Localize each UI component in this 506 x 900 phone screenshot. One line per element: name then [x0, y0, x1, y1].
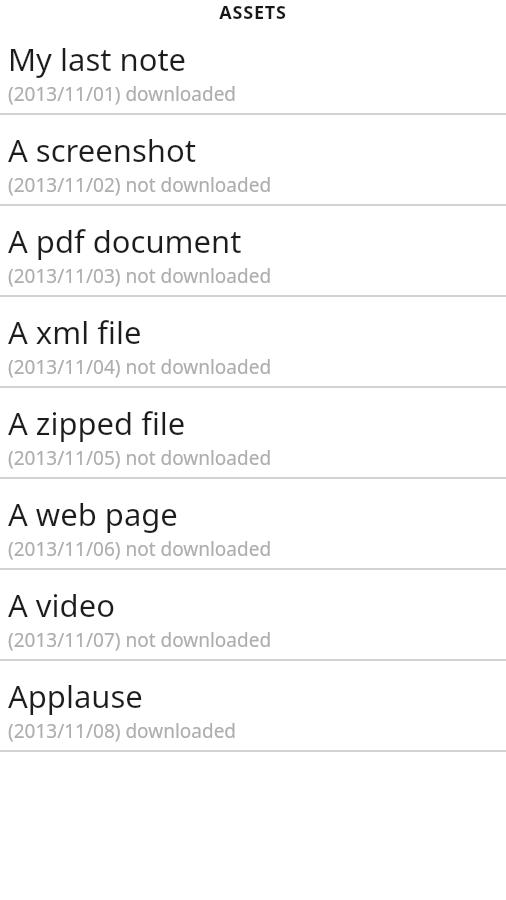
staticText: A zipped file — [8, 402, 186, 444]
button[interactable]: My last note — [0, 24, 506, 113]
staticText: A pdf document — [8, 220, 242, 262]
staticText: A xml file — [8, 311, 142, 353]
staticText: ASSETS — [219, 0, 287, 24]
button[interactable]: Applause — [0, 661, 506, 750]
staticText: (2013/11/03) not downloaded — [8, 263, 272, 289]
button[interactable]: A screenshot — [0, 115, 506, 204]
button[interactable]: A web page — [0, 479, 506, 568]
staticText: (2013/11/04) not downloaded — [8, 354, 272, 380]
staticText: (2013/11/08) downloaded — [8, 718, 237, 744]
staticText: Applause — [8, 675, 143, 717]
button[interactable]: A pdf document — [0, 206, 506, 295]
staticText: My last note — [8, 38, 187, 80]
button[interactable]: A xml file — [0, 297, 506, 386]
staticText: (2013/11/01) downloaded — [8, 81, 237, 107]
staticText: (2013/11/06) not downloaded — [8, 536, 272, 562]
staticText: (2013/11/05) not downloaded — [8, 445, 272, 471]
button[interactable]: A video — [0, 570, 506, 659]
staticText: (2013/11/07) not downloaded — [8, 627, 272, 653]
staticText: (2013/11/02) not downloaded — [8, 172, 272, 198]
staticText: A web page — [8, 493, 178, 535]
staticText: A video — [8, 584, 115, 626]
staticText: A screenshot — [8, 129, 196, 171]
button[interactable]: A zipped file — [0, 388, 506, 477]
